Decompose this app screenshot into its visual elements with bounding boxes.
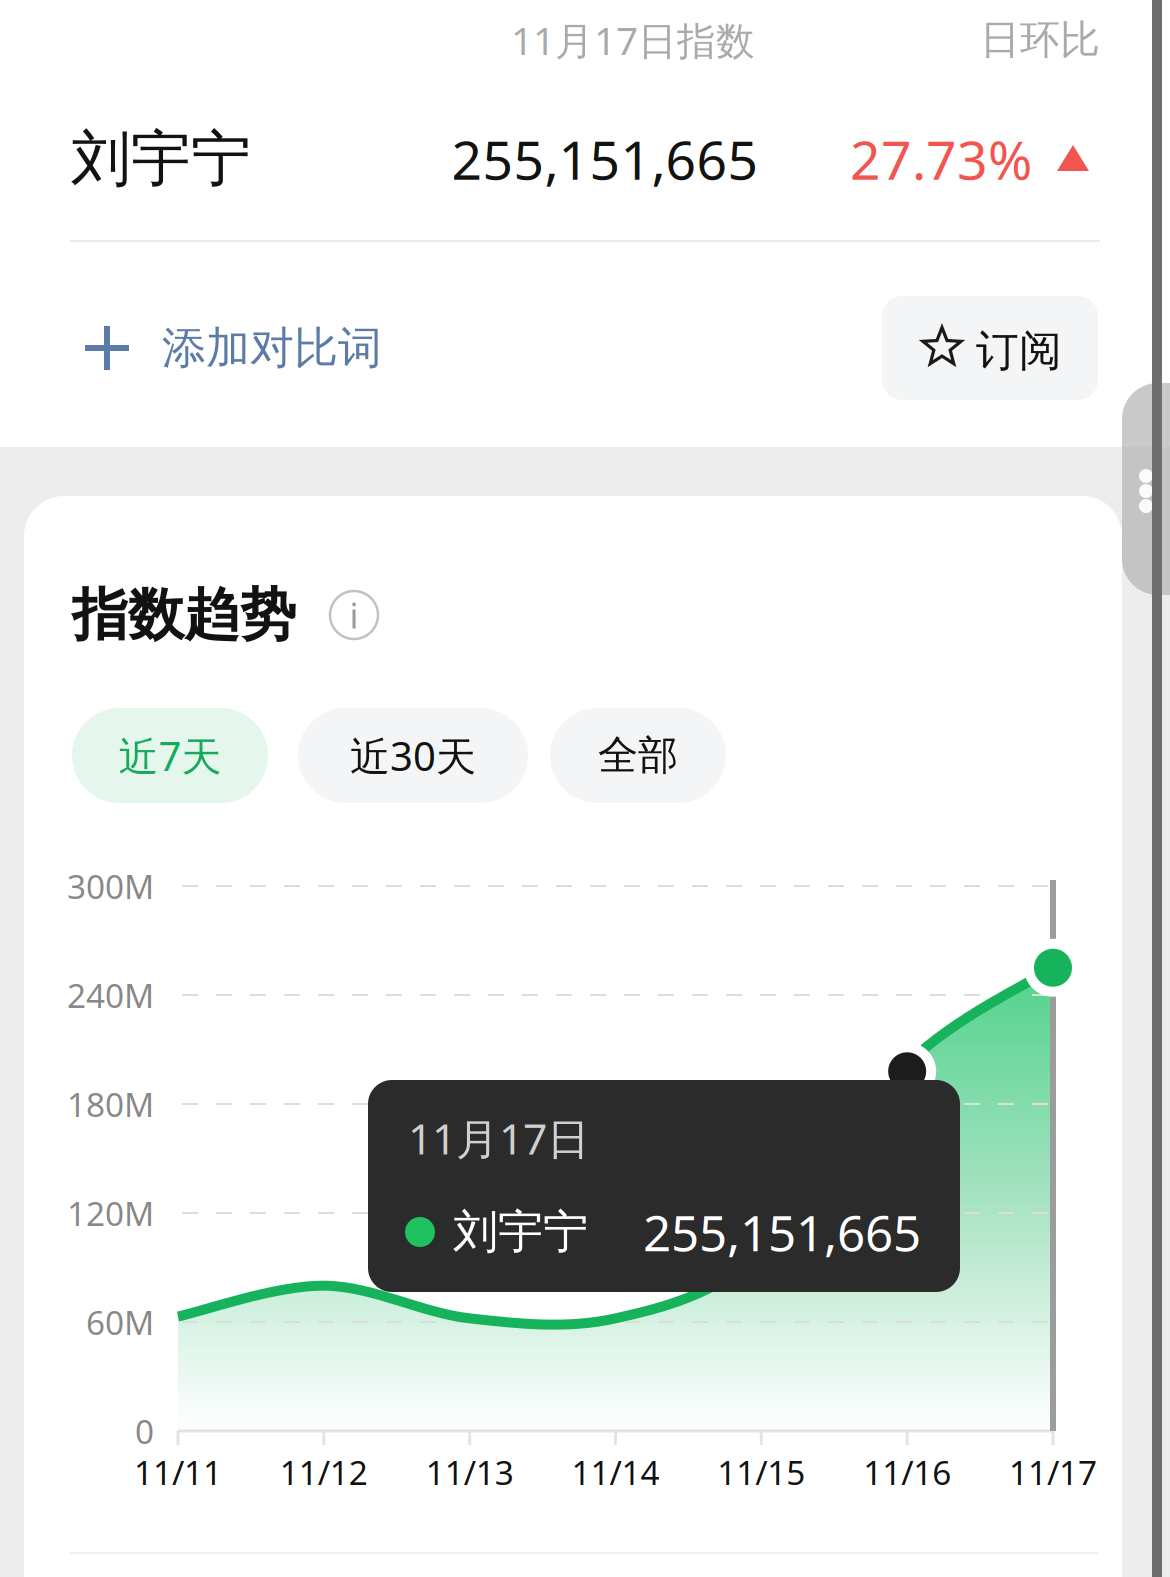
button[interactable]: 订阅	[882, 296, 1098, 400]
staticText: 11月17日指数	[511, 14, 755, 66]
staticText: 255,151,665	[451, 124, 758, 194]
staticText: 近30天	[350, 729, 476, 782]
button[interactable]: 近30天	[298, 708, 528, 803]
staticText: 300M	[67, 864, 154, 908]
button[interactable]: 添加对比词	[71, 293, 401, 403]
staticText: 11/11	[134, 1450, 222, 1494]
staticText: 指数趋势	[72, 581, 296, 649]
staticText: 11/14	[571, 1450, 659, 1494]
staticText: 刘宇宁	[453, 1204, 588, 1260]
staticText: 11月17日	[408, 1110, 590, 1166]
staticText: 11/13	[426, 1450, 514, 1494]
staticText: 刘宇宁	[71, 122, 251, 196]
staticText: 添加对比词	[162, 321, 382, 375]
staticText: 11/15	[717, 1450, 805, 1494]
staticText: 180M	[67, 1082, 154, 1126]
button[interactable]: 全部	[550, 708, 726, 803]
button[interactable]: 近7天	[72, 708, 268, 803]
staticText: 11/17	[1009, 1450, 1097, 1494]
staticText: 0	[135, 1409, 154, 1453]
staticText: 120M	[67, 1191, 154, 1235]
staticText: 240M	[67, 973, 154, 1017]
staticText: 近7天	[118, 729, 221, 782]
staticText: 全部	[598, 731, 678, 780]
staticText: 60M	[86, 1300, 154, 1344]
staticText: 11/12	[280, 1450, 368, 1494]
staticText: 255,151,665	[643, 1199, 921, 1265]
staticText: i	[349, 592, 358, 638]
staticText: 日环比	[980, 15, 1100, 64]
staticText: 订阅	[976, 325, 1062, 377]
staticText: 11/16	[863, 1450, 951, 1494]
staticText: 27.73%	[850, 124, 1032, 194]
